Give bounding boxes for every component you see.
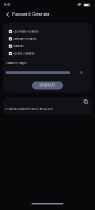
staticText: Special Characters	[13, 52, 34, 55]
staticText: Lowercase Alphabets	[13, 37, 36, 40]
staticText: Uppercase Alphabets	[13, 30, 38, 33]
staticText: Password Generator	[12, 12, 50, 17]
staticText: X<wK7#C5MfSm4T1bK7>7B3Lu4K5	[5, 107, 53, 110]
button[interactable]: Special Characters	[3, 50, 92, 57]
staticText: Numbers	[13, 45, 23, 48]
button[interactable]: Numbers	[3, 42, 92, 50]
button[interactable]: Uppercase Alphabets	[3, 28, 92, 35]
staticText: 9:41	[4, 3, 10, 7]
button[interactable]: Back	[4, 10, 11, 19]
button[interactable]: Lowercase Alphabets	[3, 35, 92, 42]
staticText: Password Length	[6, 62, 26, 65]
button[interactable]: Copy password	[84, 99, 88, 104]
staticText: 16	[80, 71, 83, 74]
staticText: GENERATE	[39, 84, 55, 87]
button[interactable]: GENERATE	[32, 81, 63, 89]
